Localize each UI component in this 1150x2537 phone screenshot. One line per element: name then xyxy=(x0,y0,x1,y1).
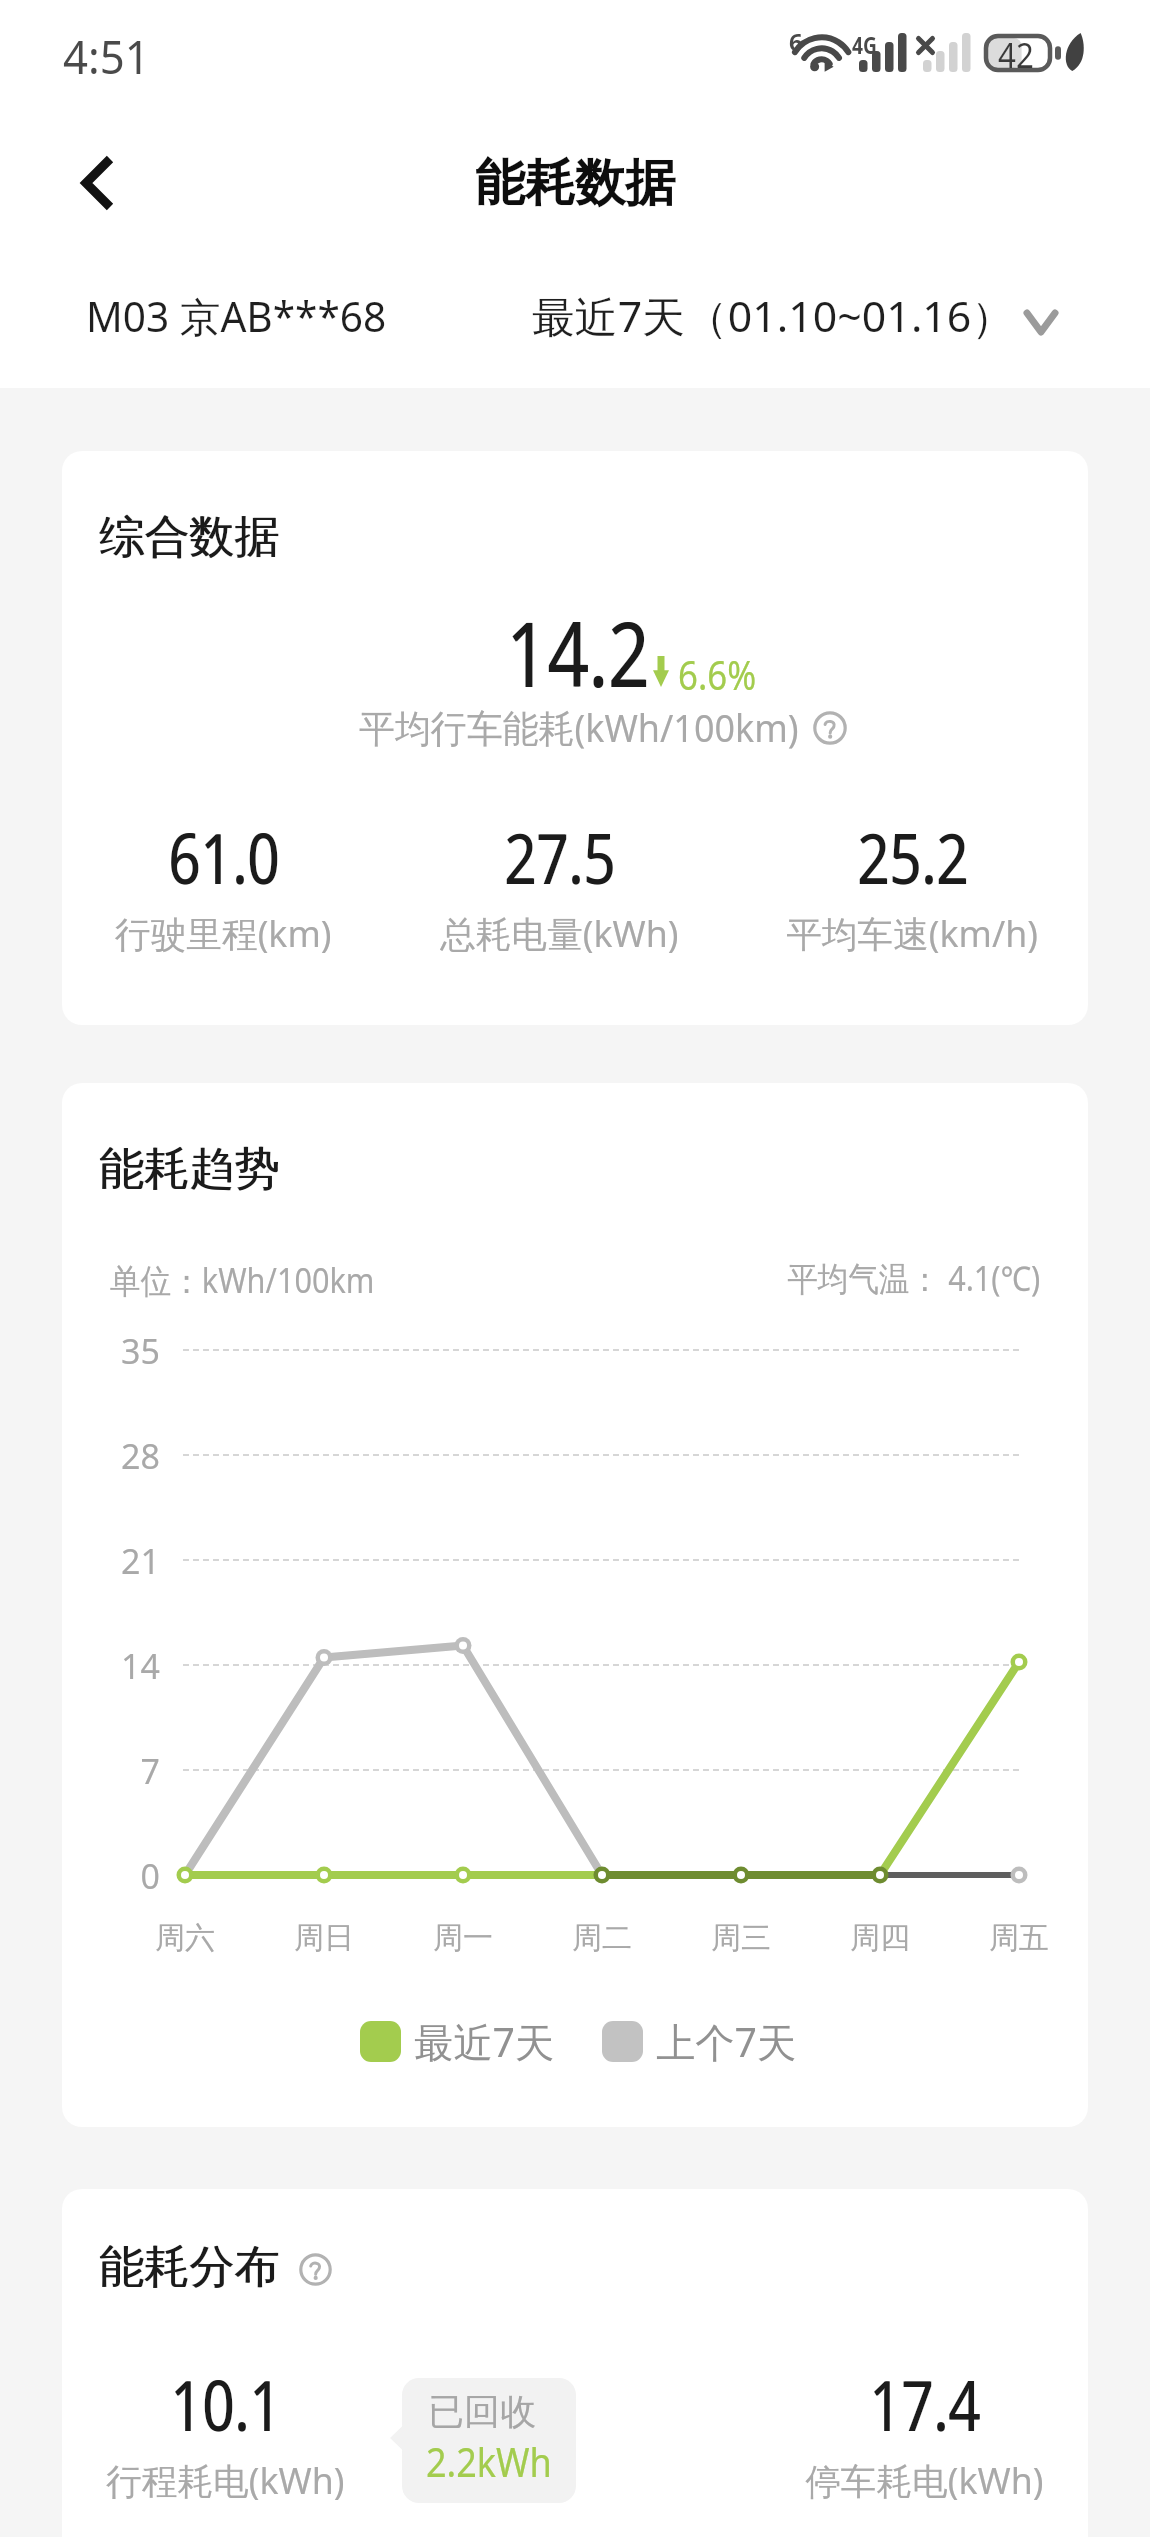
staticText: 停车耗电(kWh) xyxy=(805,2456,1044,2505)
staticText: 综合数据 xyxy=(99,509,279,566)
staticText: 10.1 xyxy=(170,2356,281,2451)
staticText: 平均行车能耗(kWh/100km) xyxy=(359,701,799,753)
staticText: 行程耗电(kWh) xyxy=(106,2456,345,2505)
staticText: 周一 xyxy=(393,1919,533,1957)
staticText: 行驶里程(km) xyxy=(115,909,332,958)
button[interactable]: M03 京AB***68 xyxy=(76,274,400,358)
staticText: 周三 xyxy=(671,1919,811,1957)
staticText: 61.0 xyxy=(169,809,280,904)
staticText: M03 京AB***68 xyxy=(86,288,387,344)
staticText: 能耗分布 xyxy=(100,2239,280,2296)
staticText: 能耗趋势 xyxy=(100,1141,280,1198)
staticText: 已回收 xyxy=(428,2389,536,2434)
staticText: 周五 xyxy=(949,1919,1088,1957)
staticText: 平均气温： 4.1(℃) xyxy=(787,1255,1041,1301)
button[interactable]: About average driving energy consumption xyxy=(813,711,847,745)
staticText: 35 xyxy=(65,1328,160,1374)
staticText: 4G xyxy=(852,28,878,61)
staticText: 14.2 xyxy=(507,591,650,714)
staticText: 能耗数据 xyxy=(475,152,675,215)
staticText: 周日 xyxy=(254,1919,394,1957)
button[interactable]: 最近7天（01.10~01.16） xyxy=(525,282,1056,349)
staticText: 14.2 xyxy=(506,591,649,714)
staticText: 能耗趋势 xyxy=(99,1141,279,1198)
staticText: 17.4 xyxy=(869,2356,980,2451)
staticText: 61.0 xyxy=(168,809,279,904)
staticText: 17.4 xyxy=(870,2356,981,2451)
staticText: 平均车速(km/h) xyxy=(786,909,1039,958)
staticText: 6.6% xyxy=(678,647,756,701)
staticText: 最近7天（01.10~01.16） xyxy=(532,287,1014,344)
staticText: 周四 xyxy=(810,1919,950,1957)
staticText: 总耗电量(kWh) xyxy=(440,909,679,958)
staticText: 21 xyxy=(65,1538,160,1584)
staticText: 0 xyxy=(65,1853,160,1899)
staticText: 10.1 xyxy=(171,2356,282,2451)
staticText: 周二 xyxy=(532,1919,672,1957)
staticText: 2.2kWh xyxy=(426,2434,552,2488)
staticText: 单位：kWh/100km xyxy=(110,1257,375,1303)
staticText: 上个7天 xyxy=(656,2014,796,2069)
staticText: 14 xyxy=(65,1643,160,1689)
staticText: 7 xyxy=(65,1748,160,1794)
staticText: 28 xyxy=(65,1433,160,1479)
staticText: 周六 xyxy=(115,1919,255,1957)
button[interactable]: About energy distribution xyxy=(299,2253,332,2286)
staticText: 综合数据 xyxy=(100,509,280,566)
staticText: 27.5 xyxy=(505,809,616,904)
staticText: 能耗分布 xyxy=(99,2239,279,2296)
staticText: 6 xyxy=(789,25,803,58)
staticText: 25.2 xyxy=(858,809,969,904)
staticText: 27.5 xyxy=(504,809,615,904)
staticText: 4:51 xyxy=(63,25,150,88)
staticText: 42 xyxy=(998,32,1034,78)
staticText: 25.2 xyxy=(857,809,968,904)
staticText: 最近7天 xyxy=(414,2014,554,2069)
button[interactable]: Back xyxy=(48,133,148,233)
